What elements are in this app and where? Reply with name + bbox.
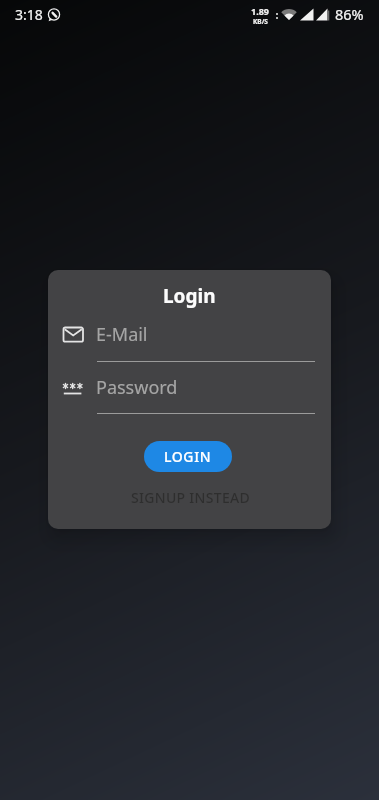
staticText: 3:18 xyxy=(15,5,43,24)
staticText: E-Mail xyxy=(96,322,148,347)
button[interactable]: Password xyxy=(96,368,315,406)
staticText: 1.89 xyxy=(251,5,269,17)
button[interactable]: SIGNUP INSTEAD xyxy=(110,482,270,512)
staticText: KB/S xyxy=(253,17,268,26)
staticText: Password xyxy=(96,375,178,400)
staticText: Login xyxy=(163,283,216,309)
button[interactable]: LOGIN xyxy=(144,441,232,472)
staticText: SIGNUP INSTEAD xyxy=(131,488,250,507)
staticText: 86% xyxy=(335,4,364,24)
staticText: LOGIN xyxy=(164,447,212,466)
button[interactable]: E-Mail xyxy=(96,315,315,353)
